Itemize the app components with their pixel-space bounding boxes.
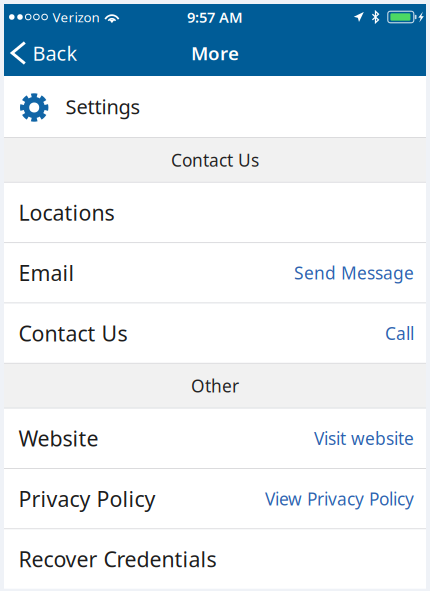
staticText: Send Message xyxy=(294,261,414,284)
staticText: Contact Us xyxy=(18,319,127,347)
staticText: 9:57 AM xyxy=(187,7,243,27)
staticText: More xyxy=(191,41,239,65)
staticText: Website xyxy=(18,424,98,452)
button[interactable]: Locations xyxy=(4,183,426,242)
button[interactable]: Email xyxy=(4,243,426,303)
staticText: Privacy Policy xyxy=(18,484,155,513)
staticText: View Privacy Policy xyxy=(265,487,414,510)
button[interactable]: Privacy Policy xyxy=(4,469,426,528)
staticText: Recover Credentials xyxy=(18,545,216,573)
staticText: Settings xyxy=(65,93,140,120)
staticText: Email xyxy=(18,259,74,287)
button[interactable]: Recover Credentials xyxy=(4,529,426,589)
staticText: Verizon xyxy=(52,8,99,26)
button[interactable]: Settings xyxy=(4,76,426,137)
staticText: Visit website xyxy=(314,427,414,450)
button[interactable]: Website xyxy=(4,409,426,468)
button[interactable]: Contact Us xyxy=(4,303,426,363)
staticText: Back xyxy=(32,40,77,66)
staticText: Other xyxy=(191,374,239,397)
staticText: Locations xyxy=(18,198,114,227)
staticText: Contact Us xyxy=(171,148,259,171)
staticText: Call xyxy=(385,322,414,345)
button[interactable]: Back xyxy=(4,30,89,76)
